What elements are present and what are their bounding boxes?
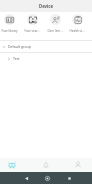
staticText: Face sear... xyxy=(24,29,40,33)
button[interactable]: Me xyxy=(66,158,90,172)
staticText: Default group xyxy=(8,44,31,49)
button[interactable]: Home xyxy=(38,172,56,184)
button[interactable]: Recents xyxy=(60,172,78,184)
button[interactable]: Devices xyxy=(0,158,24,172)
button[interactable]: Health st... xyxy=(66,12,88,33)
button[interactable]: Alerts xyxy=(34,158,58,172)
button[interactable]: Default group xyxy=(0,41,92,52)
staticText: Test xyxy=(13,56,20,61)
staticText: Face library xyxy=(1,29,18,33)
button[interactable]: Back xyxy=(17,172,35,184)
staticText: Health st... xyxy=(69,29,85,33)
button[interactable]: Test xyxy=(0,53,92,64)
staticText: Over limi... xyxy=(47,29,63,33)
staticText: Device xyxy=(39,3,54,9)
button[interactable]: Over limi... xyxy=(44,12,66,33)
button[interactable]: Face sear... xyxy=(21,12,43,33)
button[interactable]: Face library xyxy=(0,12,20,33)
